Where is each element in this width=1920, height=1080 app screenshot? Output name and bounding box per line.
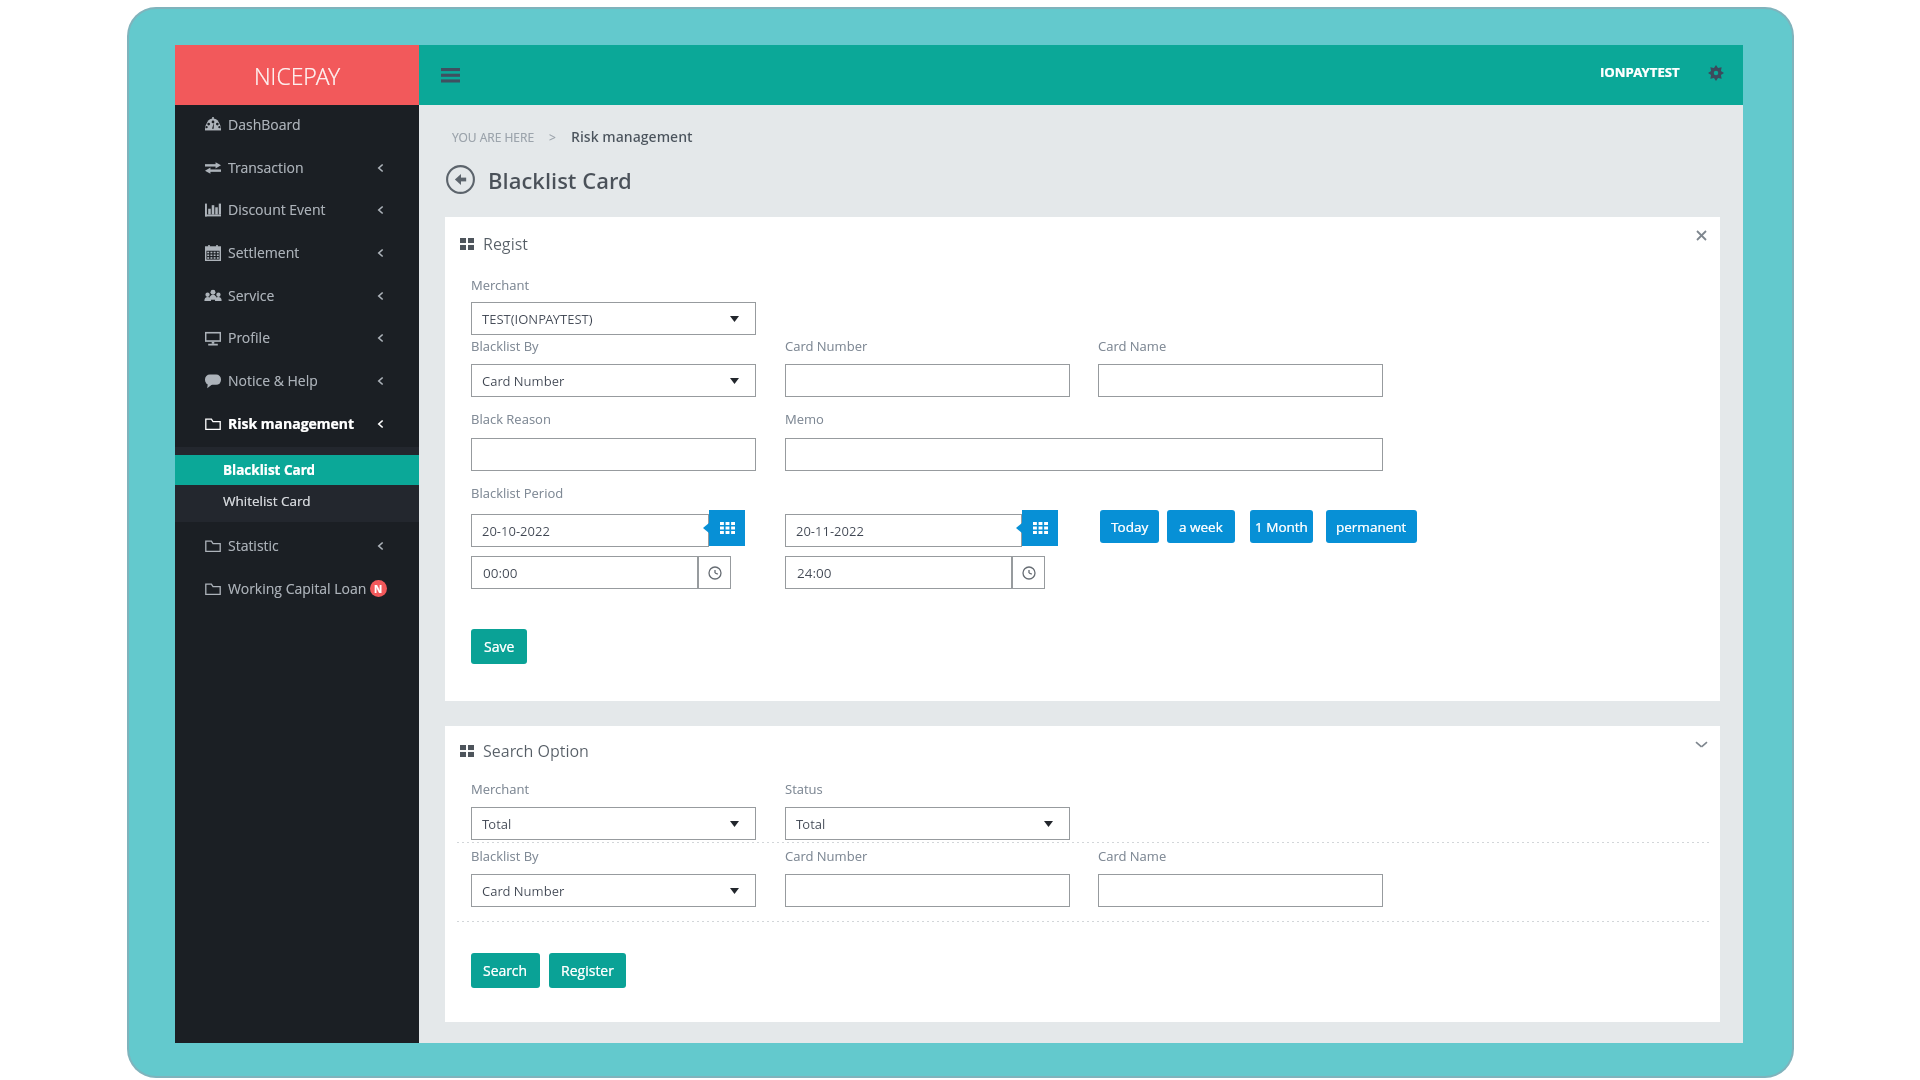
button[interactable]: Search [471, 953, 540, 988]
staticText: 24:00 [797, 564, 832, 582]
staticText: 00:00 [483, 564, 518, 582]
staticText: Transaction [228, 158, 304, 177]
staticText: a week [1179, 518, 1223, 536]
button[interactable]: Today [1100, 510, 1159, 543]
button[interactable]: TEST(IONPAYTEST) [471, 302, 756, 335]
button[interactable]: Total [471, 807, 756, 840]
button[interactable]: Back [445, 164, 476, 195]
staticText: Total [796, 815, 826, 833]
button[interactable] [785, 364, 1070, 397]
button[interactable]: 20-11-2022 [785, 514, 1022, 547]
staticText: 1 Month [1255, 518, 1308, 536]
button[interactable]: Pick time [698, 556, 731, 589]
staticText: Whitelist Card [223, 492, 311, 510]
staticText: YOU ARE HERE [452, 129, 535, 145]
staticText: Card Number [482, 882, 565, 900]
staticText: Discount Event [228, 200, 326, 219]
staticText: > [549, 129, 556, 145]
button[interactable]: Risk management [175, 402, 419, 445]
button[interactable] [785, 438, 1383, 471]
button[interactable]: Pick time [1012, 556, 1045, 589]
staticText: Working Capital Loan [228, 579, 367, 598]
button[interactable]: Collapse [1690, 733, 1712, 755]
staticText: Card Number [785, 337, 868, 355]
button[interactable]: a week [1167, 510, 1235, 543]
button[interactable]: Transaction [175, 146, 419, 189]
button[interactable]: Total [785, 807, 1070, 840]
staticText: Card Number [785, 847, 868, 865]
staticText: Blacklist By [471, 337, 539, 355]
button[interactable]: Pick date [1022, 510, 1058, 546]
button[interactable]: Card Number [471, 874, 756, 907]
staticText: Risk management [571, 127, 693, 146]
staticText: Search [483, 961, 528, 980]
button[interactable]: Settings [1698, 55, 1734, 91]
staticText: Blacklist Card [488, 165, 632, 195]
button[interactable]: Whitelist Card [175, 486, 419, 516]
staticText: Profile [228, 328, 270, 347]
button[interactable]: Discount Event [175, 188, 419, 231]
button[interactable] [1098, 364, 1383, 397]
staticText: TEST(IONPAYTEST) [482, 310, 593, 328]
button[interactable]: Card Number [471, 364, 756, 397]
staticText: Status [785, 780, 823, 798]
button[interactable]: NICEPAY [175, 45, 419, 105]
button[interactable]: Blacklist Card [175, 455, 419, 485]
staticText: Service [228, 286, 275, 305]
button[interactable]: 1 Month [1250, 510, 1313, 543]
button[interactable]: Close [1690, 224, 1712, 246]
button[interactable]: Notice & Help [175, 359, 419, 402]
staticText: N [374, 582, 383, 596]
staticText: Settlement [228, 243, 300, 262]
staticText: NICEPAY [254, 60, 341, 91]
button[interactable] [785, 874, 1070, 907]
button[interactable]: Save [471, 629, 527, 664]
staticText: Today [1111, 518, 1149, 536]
staticText: Blacklist By [471, 847, 539, 865]
button[interactable]: Statistic [175, 524, 419, 567]
staticText: Notice & Help [228, 371, 318, 390]
staticText: Card Name [1098, 337, 1167, 355]
button[interactable] [471, 438, 756, 471]
staticText: DashBoard [228, 115, 301, 134]
button[interactable]: 24:00 [785, 556, 1012, 589]
staticText: Save [484, 637, 515, 656]
staticText: Card Name [1098, 847, 1167, 865]
staticText: Blacklist Period [471, 484, 564, 502]
button[interactable]: permanent [1326, 510, 1417, 543]
button[interactable]: Profile [175, 316, 419, 359]
button[interactable]: Menu [433, 55, 468, 95]
button[interactable]: Pick date [709, 510, 745, 546]
button[interactable]: 00:00 [471, 556, 698, 589]
staticText: Statistic [228, 536, 279, 555]
button[interactable] [1098, 874, 1383, 907]
staticText: Search Option [483, 740, 589, 762]
staticText: 20-11-2022 [796, 522, 864, 540]
staticText: Total [482, 815, 512, 833]
staticText: Black Reason [471, 410, 551, 428]
button[interactable]: 20-10-2022 [471, 514, 709, 547]
button[interactable]: Working Capital Loan [175, 567, 419, 610]
staticText: Blacklist Card [223, 461, 316, 479]
staticText: Merchant [471, 276, 530, 294]
button[interactable]: IONPAYTEST [1592, 53, 1688, 91]
button[interactable]: DashBoard [175, 103, 419, 146]
staticText: permanent [1336, 518, 1407, 536]
staticText: Card Number [482, 372, 565, 390]
staticText: Risk management [228, 414, 355, 433]
button[interactable]: Register [549, 953, 626, 988]
staticText: Register [561, 961, 614, 980]
staticText: Memo [785, 410, 824, 428]
staticText: 20-10-2022 [482, 522, 550, 540]
staticText: Merchant [471, 780, 530, 798]
staticText: Regist [483, 233, 528, 255]
button[interactable]: Service [175, 274, 419, 317]
button[interactable]: Settlement [175, 231, 419, 274]
staticText: IONPAYTEST [1600, 63, 1680, 81]
